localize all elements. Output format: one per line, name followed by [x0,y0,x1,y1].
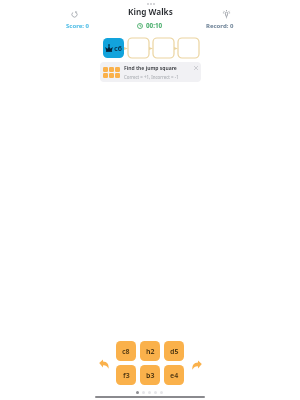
button[interactable]: Score: 0 [66,9,89,30]
button[interactable]: c6 [103,38,124,58]
button[interactable]: b3 [140,365,160,385]
button[interactable]: d5 [164,341,184,361]
staticText: d5 [170,347,179,357]
staticText: King Walks [128,6,173,17]
staticText: 00:10 [146,21,163,30]
button[interactable]: e4 [164,365,184,385]
button[interactable]: Find the jump square [100,62,201,82]
staticText: Correct = +1, Incorrect = -1 [124,74,179,80]
button[interactable]: Previous [98,358,110,370]
button[interactable] [153,38,174,58]
button[interactable] [128,38,149,58]
button[interactable]: f3 [116,365,136,385]
button[interactable]: h2 [140,341,160,361]
staticText: Score: 0 [66,22,89,30]
button[interactable]: Close [191,63,200,72]
staticText: h2 [146,347,155,357]
staticText: b3 [146,371,155,381]
staticText: e4 [170,371,179,381]
staticText: c6 [114,43,123,53]
staticText: f3 [123,371,130,381]
button[interactable]: c8 [116,341,136,361]
button[interactable]: Record: 0 [206,9,234,30]
button[interactable]: Next [191,359,203,371]
button[interactable] [178,38,199,58]
staticText: c8 [122,347,130,357]
staticText: Find the jump square [124,65,177,72]
staticText: Record: 0 [206,22,234,30]
